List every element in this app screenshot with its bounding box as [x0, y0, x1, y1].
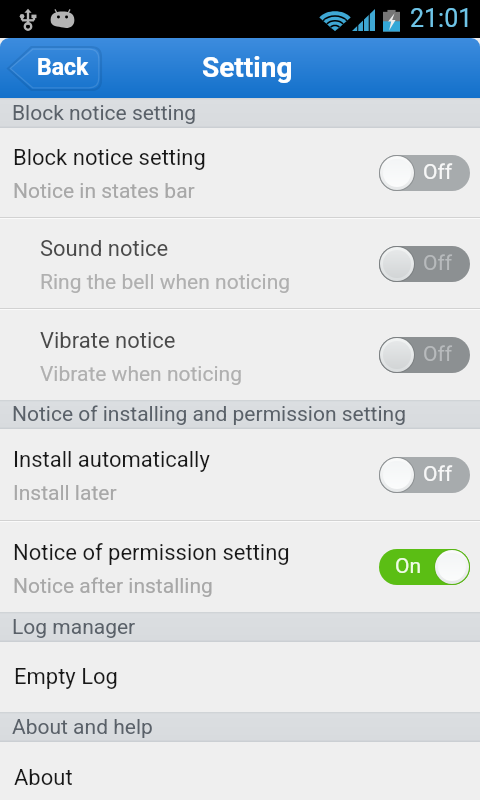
staticText: Vibrate when noticing: [40, 362, 242, 387]
button[interactable]: Off: [379, 457, 470, 493]
button[interactable]: About: [0, 742, 480, 800]
staticText: Setting: [202, 51, 293, 84]
staticText: Back: [37, 54, 89, 81]
button[interactable]: Block notice setting: [0, 128, 480, 217]
staticText: Install automatically: [13, 447, 210, 473]
staticText: On: [395, 554, 422, 579]
staticText: Off: [423, 342, 453, 367]
button[interactable]: Back: [6, 45, 103, 92]
button[interactable]: Sound notice: [0, 219, 480, 308]
button[interactable]: Off: [379, 337, 470, 373]
staticText: Block notice setting: [12, 101, 197, 126]
staticText: Sound notice: [40, 236, 169, 262]
staticText: Notice of installing and permission sett…: [12, 402, 406, 427]
button[interactable]: Notice of permission setting: [0, 522, 480, 612]
staticText: Block notice setting: [13, 145, 206, 171]
staticText: Vibrate notice: [40, 328, 176, 354]
staticText: About and help: [12, 715, 153, 740]
staticText: Install later: [13, 481, 117, 506]
staticText: Off: [423, 160, 453, 185]
button[interactable]: Vibrate notice: [0, 310, 480, 400]
button[interactable]: Install automatically: [0, 429, 480, 520]
staticText: Off: [423, 251, 453, 276]
button[interactable]: Off: [379, 155, 470, 191]
button[interactable]: Off: [379, 246, 470, 282]
staticText: Off: [423, 462, 453, 487]
button[interactable]: Empty Log: [0, 642, 480, 712]
staticText: Notice of permission setting: [13, 540, 290, 566]
staticText: Empty Log: [14, 664, 118, 690]
staticText: 21:01: [410, 4, 473, 33]
staticText: Notice in states bar: [13, 179, 195, 204]
staticText: Ring the bell when noticing: [40, 270, 291, 295]
staticText: About: [14, 765, 73, 791]
staticText: Log manager: [12, 615, 136, 640]
staticText: Notice after installing: [13, 574, 213, 599]
button[interactable]: On: [379, 549, 470, 585]
